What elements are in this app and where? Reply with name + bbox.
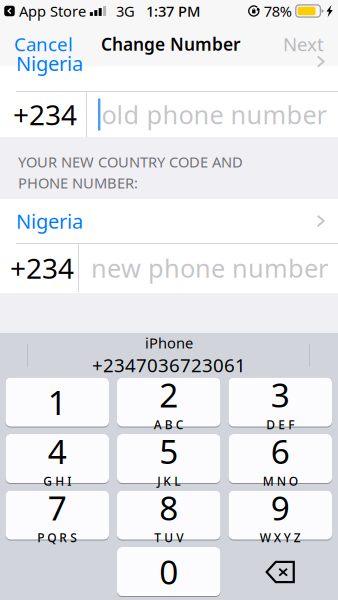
staticText: Cancel — [14, 32, 73, 56]
button[interactable]: Next — [274, 22, 333, 66]
staticText: 1:37 PM — [146, 1, 200, 21]
button[interactable]: 2 — [117, 377, 220, 427]
staticText: +234 — [13, 96, 77, 133]
staticText: +234 — [10, 249, 74, 287]
button[interactable]: 4 — [5, 434, 109, 484]
staticText: old phone number — [101, 98, 326, 131]
staticText: iPhone — [145, 333, 193, 353]
staticText: D E F — [266, 417, 294, 433]
staticText: YOUR NEW COUNTRY CODE AND — [18, 152, 243, 171]
staticText: T U V — [154, 530, 183, 546]
button[interactable]: 3 — [228, 377, 332, 427]
staticText: M N O — [263, 473, 298, 489]
button[interactable]: Cancel — [5, 22, 82, 66]
staticText: App Store — [19, 1, 86, 21]
staticText: 9 — [271, 485, 290, 530]
staticText: 8 — [159, 485, 178, 530]
button[interactable]: Delete — [228, 547, 332, 596]
staticText: J K L — [157, 473, 180, 489]
staticText: 3G — [116, 1, 135, 21]
staticText: Nigeria — [16, 208, 83, 234]
staticText: Change Number — [101, 32, 241, 55]
button[interactable]: Nigeria — [0, 199, 338, 243]
button[interactable]: 5 — [117, 434, 220, 484]
button[interactable]: 0 — [117, 547, 220, 597]
button[interactable]: 8 — [117, 490, 220, 540]
staticText: 7 — [48, 485, 67, 530]
staticText: 4 — [48, 429, 67, 473]
staticText: new phone number — [91, 251, 328, 285]
button[interactable]: 7 — [5, 490, 109, 540]
staticText: 78% — [264, 1, 292, 21]
button[interactable]: 6 — [228, 434, 332, 484]
staticText: 0 — [159, 549, 178, 594]
staticText: P Q R S — [37, 530, 77, 546]
staticText: Nigeria — [16, 50, 83, 77]
staticText: 5 — [159, 429, 178, 473]
staticText: +2347036723061 — [92, 353, 246, 377]
button[interactable]: Nigeria — [0, 66, 338, 91]
staticText: 3 — [271, 372, 290, 417]
staticText: Next — [283, 32, 324, 56]
button[interactable]: 9 — [228, 490, 332, 540]
staticText: 1 — [48, 380, 67, 424]
staticText: A B C — [154, 417, 184, 433]
button[interactable]: 1 — [5, 377, 109, 427]
staticText: W X Y Z — [260, 530, 301, 546]
staticText: 2 — [159, 372, 178, 417]
staticText: 6 — [271, 429, 290, 473]
staticText: G H I — [43, 473, 71, 489]
staticText: PHONE NUMBER: — [18, 173, 138, 192]
